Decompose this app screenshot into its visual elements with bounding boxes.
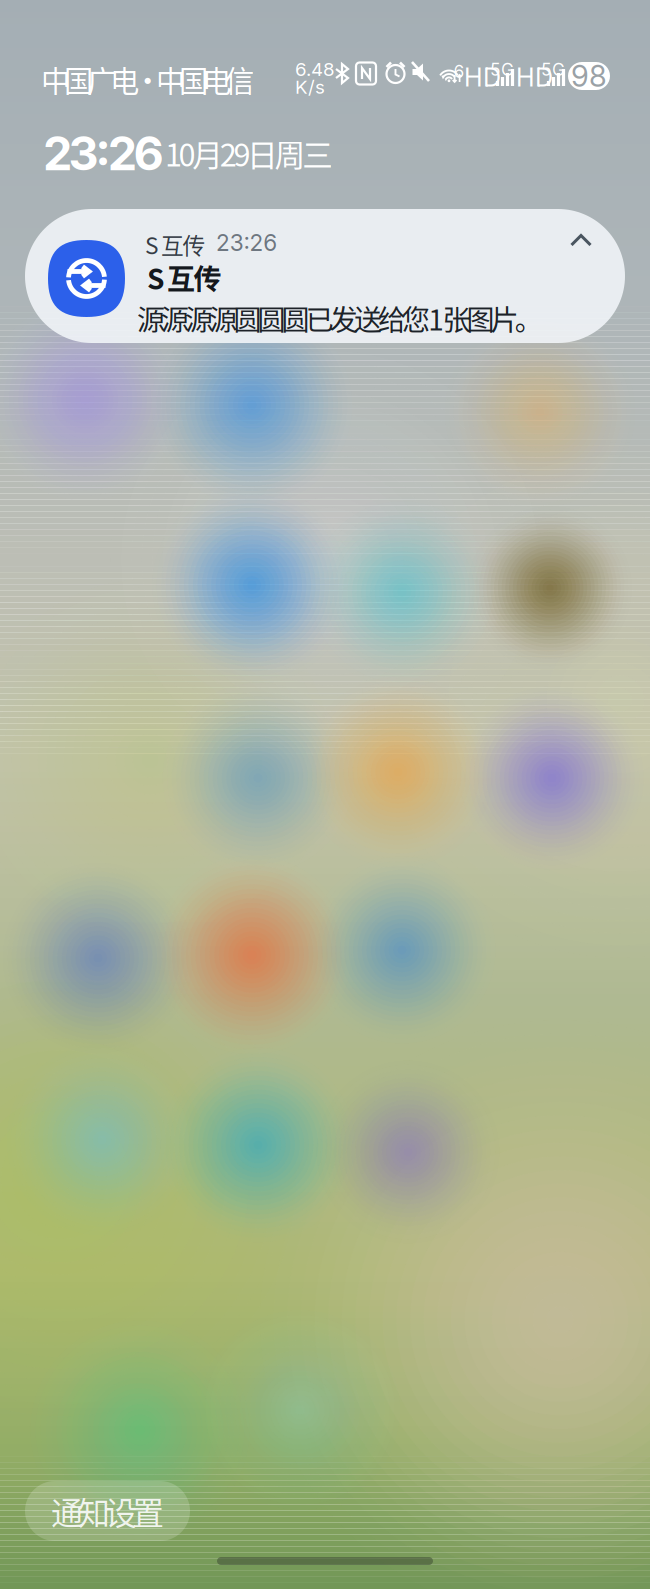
staticText: S 互传 xyxy=(147,257,221,297)
staticText: HD xyxy=(464,62,501,93)
staticText: 中国广电·中国电信 xyxy=(41,58,254,100)
button[interactable]: 通知设置 xyxy=(25,1481,190,1541)
staticText: 6 xyxy=(453,61,464,82)
staticText: 5G xyxy=(541,59,565,80)
staticText: K/s xyxy=(295,76,325,98)
staticText: HD xyxy=(516,62,553,93)
staticText: 23:26 xyxy=(216,229,277,256)
staticText: 98 xyxy=(571,58,607,94)
staticText: S 互传 xyxy=(145,228,205,261)
staticText: 6.48 xyxy=(295,58,335,81)
staticText: 通知设置 xyxy=(51,1488,164,1534)
button[interactable]: S 互传 xyxy=(25,209,625,343)
staticText: 23:26 xyxy=(43,125,163,181)
staticText: 10月29日周三 xyxy=(165,131,333,175)
staticText: 源源源源圆圆圆已发送给您 1 张图片。 xyxy=(137,298,543,338)
staticText: 5G xyxy=(490,59,514,80)
